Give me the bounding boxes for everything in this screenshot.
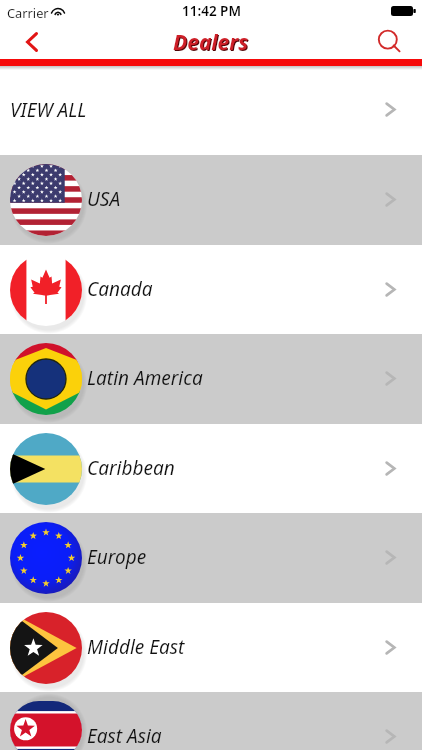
staticText: Caribbean (87, 455, 175, 481)
button[interactable]: East Asia (0, 692, 422, 750)
button[interactable]: Caribbean (0, 424, 422, 514)
staticText: East Asia (87, 723, 162, 749)
staticText: Dealers (174, 29, 250, 58)
button[interactable]: USA (0, 155, 422, 245)
button[interactable]: Canada (0, 245, 422, 335)
button[interactable]: Back (8, 23, 56, 57)
button[interactable]: Latin America (0, 334, 422, 424)
staticText: Canada (87, 276, 153, 302)
staticText: USA (87, 186, 121, 212)
button[interactable]: Europe (0, 513, 422, 603)
button[interactable]: Middle East (0, 603, 422, 693)
staticText: Latin America (87, 365, 203, 391)
staticText: Carrier (7, 4, 49, 21)
button[interactable]: Search (374, 23, 418, 57)
staticText: Middle East (87, 634, 185, 660)
button[interactable]: VIEW ALL (0, 70, 422, 155)
staticText: Dealers (173, 28, 249, 57)
staticText: 11:42 PM (182, 2, 241, 20)
staticText: Europe (87, 544, 147, 570)
staticText: VIEW ALL (10, 97, 87, 123)
